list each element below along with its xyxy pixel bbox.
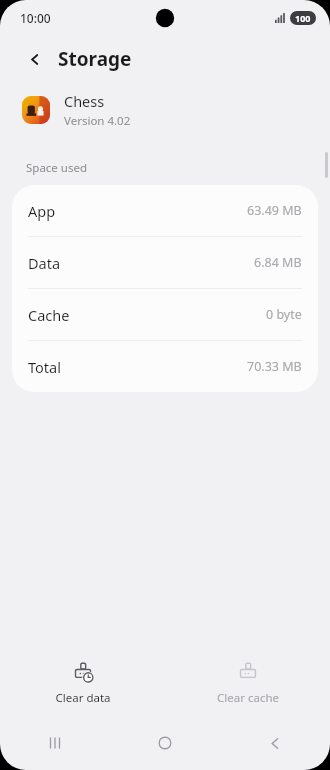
- button[interactable]: Data: [12, 237, 318, 288]
- button[interactable]: Recent apps: [0, 726, 110, 760]
- button[interactable]: App: [12, 185, 318, 236]
- button[interactable]: Clear data: [0, 658, 165, 710]
- staticText: Cache: [28, 305, 70, 325]
- button[interactable]: Chess: [0, 82, 330, 138]
- staticText: Clear data: [55, 690, 111, 706]
- staticText: 6.84 MB: [254, 254, 302, 271]
- staticText: Clear cache: [217, 690, 279, 706]
- staticText: Version 4.02: [64, 113, 131, 129]
- button[interactable]: Clear cache: [165, 658, 330, 710]
- staticText: 10:00: [20, 10, 51, 26]
- staticText: Space used: [26, 160, 88, 176]
- staticText: 0 byte: [266, 306, 302, 323]
- button[interactable]: Back: [220, 726, 330, 760]
- staticText: Total: [28, 357, 61, 377]
- button[interactable]: Total: [12, 341, 318, 392]
- button[interactable]: Back: [20, 44, 50, 74]
- staticText: Chess: [64, 91, 105, 111]
- staticText: App: [28, 201, 56, 221]
- staticText: Data: [28, 253, 61, 273]
- staticText: 70.33 MB: [247, 358, 302, 375]
- staticText: 63.49 MB: [247, 202, 302, 219]
- button[interactable]: Cache: [12, 289, 318, 340]
- staticText: Storage: [58, 46, 132, 72]
- button[interactable]: Home: [110, 726, 220, 760]
- staticText: 100: [295, 12, 311, 24]
